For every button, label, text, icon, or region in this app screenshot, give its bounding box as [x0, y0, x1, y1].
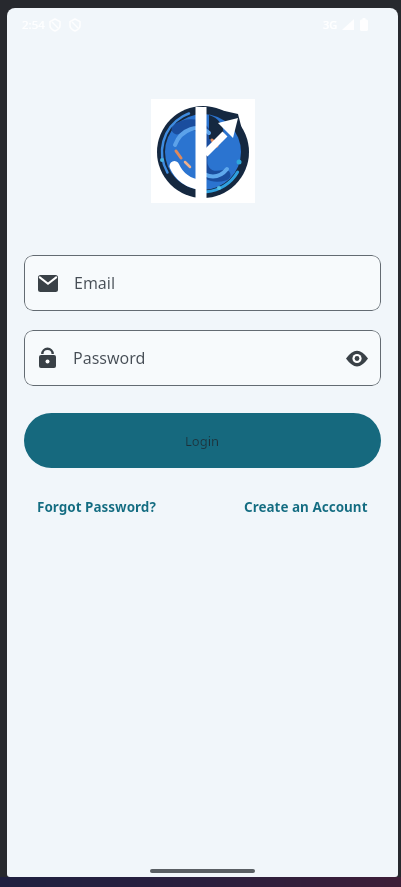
staticText: 2:54 [22, 17, 45, 33]
button[interactable]: Password [24, 330, 381, 386]
button[interactable] [346, 351, 368, 366]
button[interactable]: Email [24, 255, 381, 311]
button[interactable]: Login [24, 413, 381, 468]
staticText: Email [74, 272, 116, 294]
staticText: Password [73, 347, 146, 369]
button[interactable]: Forgot Password? [37, 498, 156, 516]
staticText: Login [185, 432, 220, 450]
staticText: 3G [323, 17, 338, 32]
button[interactable]: Create an Account [244, 498, 368, 516]
